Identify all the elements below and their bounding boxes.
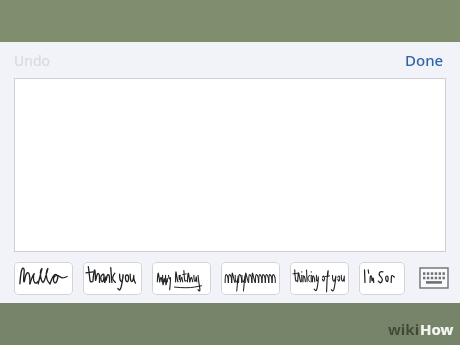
staticText: How <box>420 319 454 339</box>
button[interactable]: Undo <box>10 48 54 73</box>
button[interactable]: Handwriting suggestion <box>152 262 211 295</box>
button[interactable]: Handwriting suggestion <box>359 262 405 295</box>
button[interactable]: Handwriting suggestion <box>290 262 349 295</box>
staticText: wiki <box>388 319 420 339</box>
button[interactable]: Handwriting suggestion <box>83 262 142 295</box>
button[interactable]: Handwriting suggestion <box>221 262 280 295</box>
staticText: Undo <box>14 51 50 70</box>
staticText: Done <box>405 50 444 70</box>
button[interactable]: Handwriting suggestion <box>14 262 73 295</box>
button[interactable] <box>14 78 446 252</box>
button[interactable]: Done <box>401 47 448 73</box>
button[interactable]: Switch to keyboard <box>419 267 449 289</box>
